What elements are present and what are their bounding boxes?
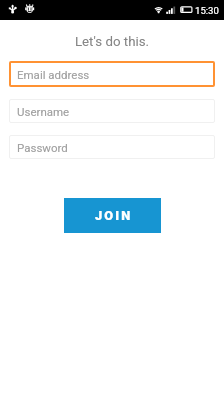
- button[interactable]: Password: [9, 135, 215, 159]
- staticText: Let's do this.: [0, 34, 224, 50]
- staticText: Password: [17, 141, 68, 154]
- button[interactable]: Email address: [9, 61, 215, 87]
- button[interactable]: Username: [9, 99, 215, 123]
- staticText: JOIN: [95, 208, 133, 223]
- button[interactable]: JOIN: [64, 198, 161, 233]
- staticText: Email address: [17, 68, 90, 81]
- staticText: Username: [17, 105, 70, 118]
- other: Status bar: [0, 0, 224, 20]
- staticText: 15:30: [195, 5, 219, 16]
